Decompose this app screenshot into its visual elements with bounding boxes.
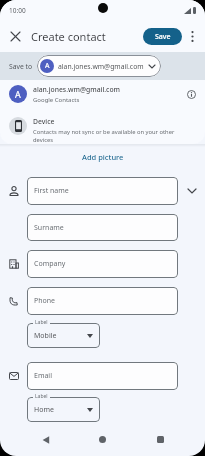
staticText: A bbox=[15, 88, 21, 100]
button[interactable]: Mobile bbox=[27, 319, 100, 348]
button[interactable]: Email bbox=[27, 362, 178, 390]
staticText: alan.jones.wm@gmail.com bbox=[58, 62, 144, 71]
staticText: A bbox=[45, 61, 50, 71]
button[interactable]: Company bbox=[27, 250, 178, 278]
button[interactable]: Device bbox=[0, 108, 205, 144]
button[interactable]: Add picture bbox=[0, 149, 205, 165]
button[interactable]: First name bbox=[27, 177, 178, 205]
staticText: Company bbox=[34, 259, 66, 269]
button[interactable] bbox=[11, 32, 20, 41]
staticText: Email bbox=[34, 371, 52, 381]
staticText: Save bbox=[155, 32, 171, 42]
staticText: Device bbox=[33, 117, 55, 126]
button[interactable]: Home bbox=[27, 393, 100, 422]
staticText: Home bbox=[34, 405, 54, 415]
button[interactable] bbox=[191, 31, 194, 42]
staticText: Add picture bbox=[82, 152, 124, 162]
staticText: Label bbox=[35, 319, 48, 326]
staticText: Mobile bbox=[34, 331, 57, 341]
staticText: Contacts may not sync or be available on… bbox=[33, 128, 175, 144]
staticText: Label bbox=[35, 393, 48, 400]
button[interactable] bbox=[41, 435, 50, 444]
staticText: Google Contacts bbox=[33, 96, 80, 104]
button[interactable] bbox=[99, 436, 106, 443]
button[interactable]: Surname bbox=[27, 214, 178, 241]
staticText: Surname bbox=[34, 223, 64, 233]
staticText: First name bbox=[34, 186, 69, 196]
button[interactable]: A bbox=[0, 80, 205, 108]
staticText: 10:00 bbox=[9, 6, 26, 15]
staticText: alan.jones.wm@gmail.com bbox=[33, 85, 121, 94]
button[interactable]: A bbox=[37, 55, 161, 77]
staticText: Create contact bbox=[31, 29, 106, 44]
button[interactable]: Save bbox=[143, 28, 182, 45]
staticText: Phone bbox=[34, 296, 56, 306]
staticText: Save to bbox=[9, 62, 33, 71]
button[interactable] bbox=[157, 436, 164, 443]
button[interactable]: Phone bbox=[27, 287, 178, 315]
